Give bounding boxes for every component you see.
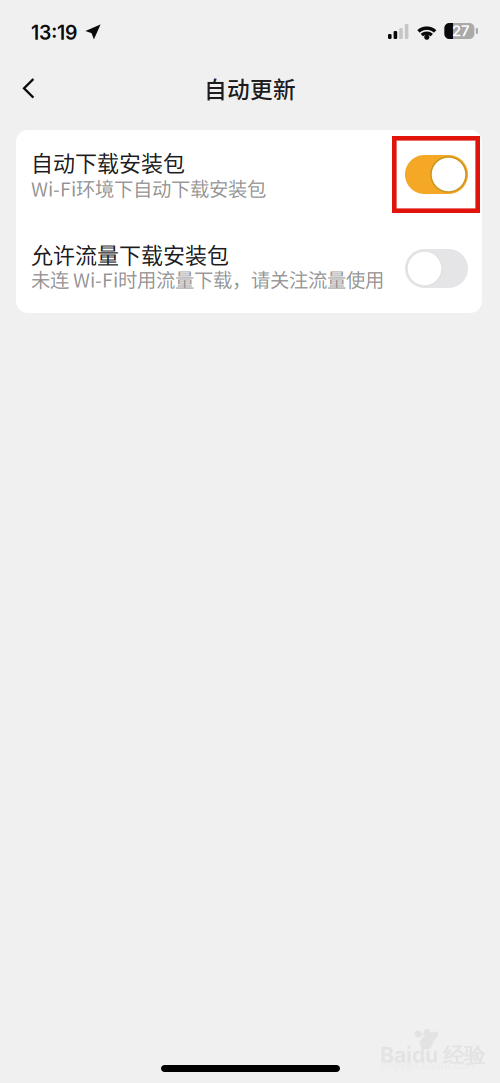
button[interactable]: 返回 <box>6 66 50 110</box>
staticText: 未连 Wi-Fi时用流量下载，请关注流量使用 <box>31 265 384 293</box>
staticText: 允许流量下载安装包 <box>31 238 229 270</box>
staticText: 27 <box>452 22 469 40</box>
staticText: 自动更新 <box>204 72 296 104</box>
button[interactable] <box>16 130 482 222</box>
staticText: jingyan.baidu.com <box>381 1059 474 1072</box>
staticText: 自动下载安装包 <box>31 146 185 178</box>
staticText: Wi-Fi环境下自动下载安装包 <box>31 174 266 202</box>
button[interactable]: 自动下载安装包 <box>405 155 468 194</box>
staticText: Baidu 经验 <box>380 1042 485 1069</box>
button[interactable] <box>16 222 482 313</box>
button[interactable]: 允许流量下载安装包 <box>405 249 468 288</box>
staticText: 13:19 <box>31 21 77 45</box>
